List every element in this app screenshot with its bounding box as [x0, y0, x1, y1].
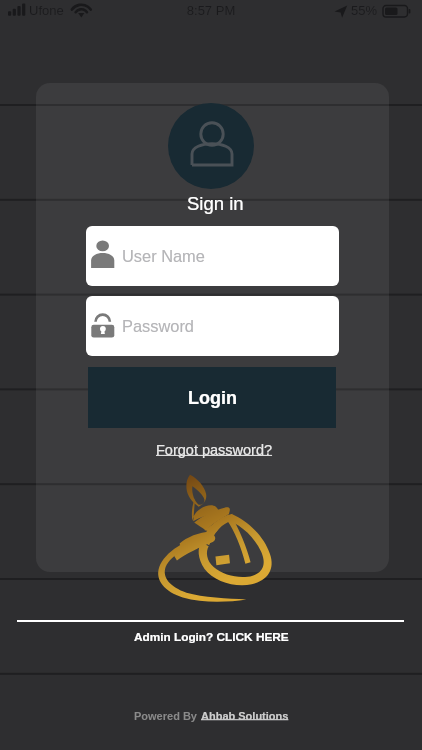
staticText: Ahbab Solutions [201, 710, 289, 722]
staticText: Login [188, 388, 237, 408]
staticText: Sign in [187, 193, 244, 214]
staticText: Password [122, 317, 194, 335]
staticText: Admin Login? CLICK HERE [134, 630, 289, 643]
button[interactable]: Login [88, 367, 336, 428]
staticText: 55% [351, 3, 378, 18]
staticText: User Name [122, 247, 205, 265]
button[interactable]: Ahbab Solutions [201, 710, 289, 722]
button[interactable]: User Name [86, 226, 339, 286]
staticText: Forgot password? [156, 442, 273, 458]
button[interactable]: Admin Login? CLICK HERE [130, 626, 293, 647]
button[interactable]: Password [86, 296, 339, 356]
staticText: 8:57 PM [0, 3, 422, 18]
button[interactable]: Forgot password? [152, 438, 277, 462]
staticText: Ufone [29, 3, 64, 18]
staticText: Powered By [134, 710, 201, 722]
